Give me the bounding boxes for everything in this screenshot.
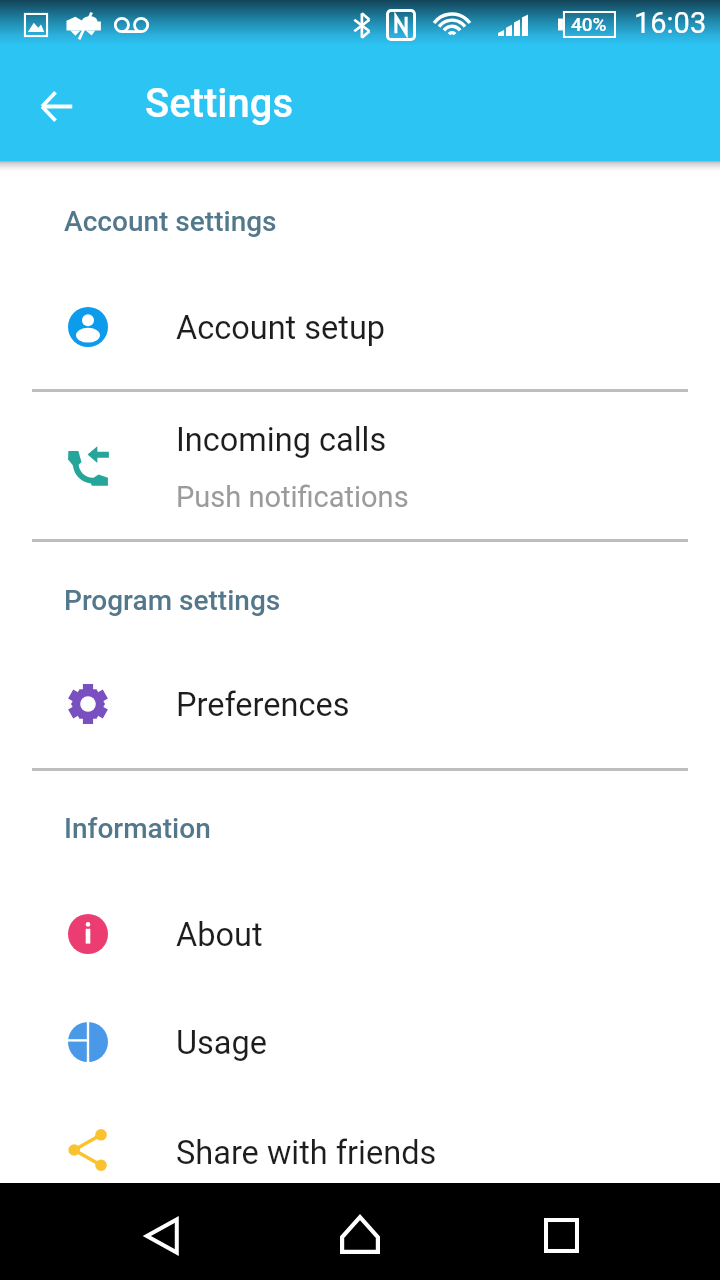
staticText: Usage bbox=[176, 1024, 268, 1062]
staticText: About bbox=[176, 916, 263, 954]
staticText: 16:03 bbox=[634, 6, 707, 40]
staticText: Preferences bbox=[176, 686, 350, 724]
staticText: Share with friends bbox=[176, 1134, 437, 1172]
button[interactable]: Back bbox=[116, 1191, 206, 1280]
button[interactable]: Preferences bbox=[0, 648, 720, 756]
staticText: Settings bbox=[145, 80, 294, 127]
staticText: 40% bbox=[571, 13, 607, 35]
staticText: Incoming calls bbox=[176, 421, 387, 459]
button[interactable]: Share with friends bbox=[0, 1094, 720, 1202]
button[interactable]: Account setup bbox=[0, 273, 720, 381]
button[interactable]: Home bbox=[315, 1189, 405, 1279]
button[interactable]: Usage bbox=[0, 986, 720, 1094]
staticText: Account settings bbox=[64, 205, 277, 238]
button[interactable]: Recent apps bbox=[516, 1190, 606, 1280]
staticText: Information bbox=[64, 812, 211, 845]
button[interactable]: Incoming calls bbox=[0, 388, 720, 544]
button[interactable]: Back bbox=[23, 72, 89, 138]
staticText: Account setup bbox=[176, 309, 386, 347]
staticText: Push notifications bbox=[176, 480, 409, 514]
button[interactable]: About bbox=[0, 878, 720, 986]
staticText: Program settings bbox=[64, 584, 281, 617]
